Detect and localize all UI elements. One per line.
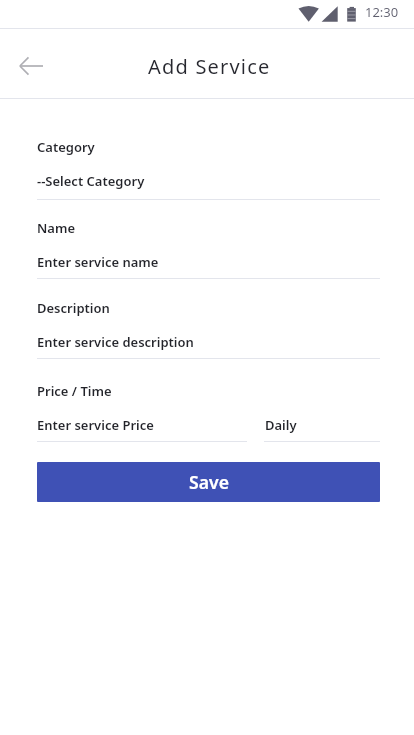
- staticText: Enter service description: [37, 333, 194, 351]
- button[interactable]: Enter service Price: [37, 416, 247, 442]
- staticText: Add Service: [148, 53, 271, 80]
- button[interactable]: Description: [37, 299, 380, 359]
- button[interactable]: Category: [37, 138, 380, 200]
- staticText: Price / Time: [37, 382, 112, 400]
- staticText: Save: [189, 470, 229, 494]
- staticText: Description: [37, 299, 110, 317]
- staticText: Category: [37, 138, 95, 156]
- staticText: Name: [37, 219, 75, 237]
- staticText: 12:30: [365, 3, 399, 21]
- staticText: Enter service name: [37, 253, 159, 271]
- button[interactable]: Name: [37, 219, 380, 279]
- staticText: Enter service Price: [37, 416, 154, 434]
- staticText: --Select Category: [37, 172, 145, 190]
- button[interactable]: Back: [6, 42, 54, 90]
- staticText: Daily: [265, 416, 297, 434]
- button[interactable]: Save: [37, 462, 380, 502]
- button[interactable]: Daily: [264, 416, 380, 442]
